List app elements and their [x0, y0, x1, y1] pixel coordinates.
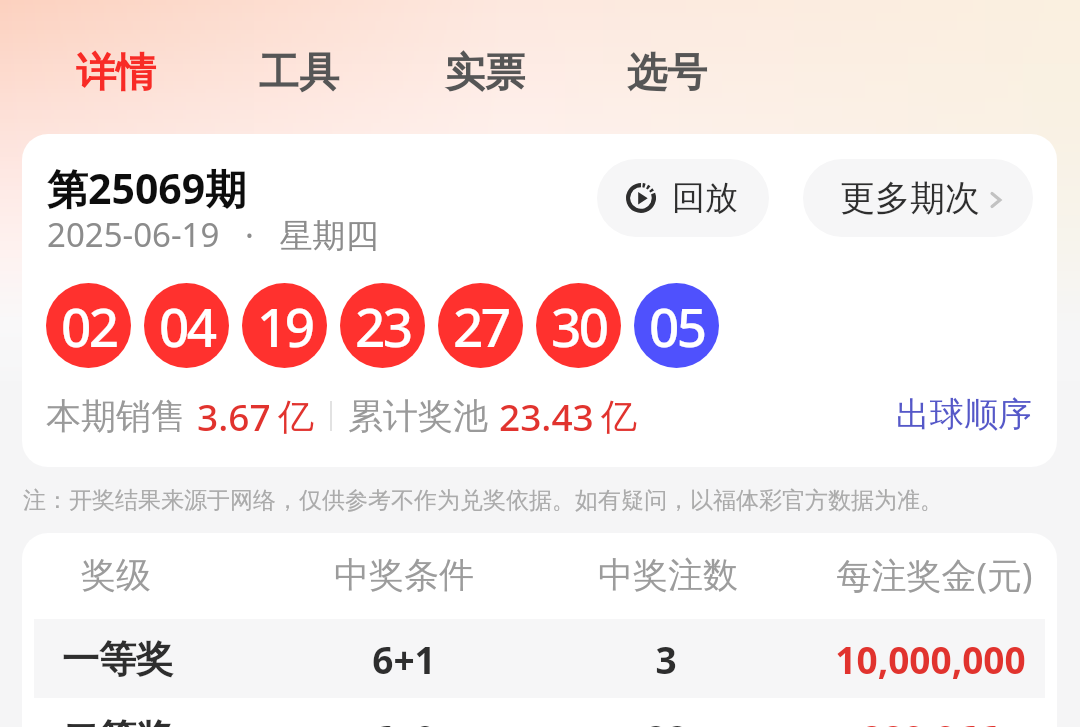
button[interactable]: 选号	[609, 34, 725, 110]
staticText: 6+0	[372, 713, 436, 727]
staticText: 累计奖池	[348, 394, 488, 438]
button[interactable]: 工具	[241, 34, 357, 110]
staticText: 中奖条件	[334, 553, 474, 597]
staticText: 注：开奖结果来源于网络，仅供参考不作为兑奖依据。如有疑问，以福体彩官方数据为准。	[23, 486, 943, 515]
staticText: 02	[61, 290, 117, 362]
staticText: 一等奖	[62, 636, 173, 683]
staticText: 3	[655, 634, 677, 684]
other: 回放	[626, 183, 656, 213]
staticText: 05	[649, 290, 705, 362]
staticText: 实票	[445, 47, 525, 97]
staticText: 本期销售	[46, 394, 186, 438]
button[interactable]: 回放	[597, 159, 769, 237]
staticText: 详情	[76, 47, 156, 97]
staticText: 23.43	[499, 391, 594, 441]
button[interactable]: 详情	[58, 34, 174, 110]
staticText: 10,000,000	[835, 634, 1026, 684]
staticText: 奖级	[81, 553, 151, 597]
staticText: 30	[551, 290, 607, 362]
staticText: 3.67	[197, 391, 271, 441]
staticText: 回放	[672, 177, 738, 219]
button[interactable]: 更多期次	[803, 159, 1033, 237]
button[interactable]: 实票	[427, 34, 543, 110]
staticText: 工具	[259, 47, 339, 97]
staticText: 23	[355, 290, 411, 362]
staticText: 27	[453, 290, 509, 362]
staticText: 亿	[278, 394, 314, 439]
button[interactable]	[34, 619, 1045, 698]
staticText: 04	[159, 290, 215, 362]
staticText: 二等奖	[62, 715, 173, 727]
button[interactable]	[34, 698, 1045, 727]
staticText: 第25069期	[47, 160, 247, 216]
staticText: 19	[257, 290, 313, 362]
staticText: 亿	[601, 394, 637, 439]
staticText: 289,966	[861, 713, 999, 727]
staticText: 中奖注数	[598, 553, 738, 597]
staticText: 更多期次	[840, 176, 980, 220]
staticText: 出球顺序	[896, 393, 1032, 436]
staticText: 2025-06-19 · 星期四	[47, 212, 379, 257]
staticText: 每注奖金(元)	[836, 551, 1033, 599]
button[interactable]: 出球顺序	[890, 387, 1038, 442]
staticText: 选号	[627, 47, 707, 97]
staticText: 22	[645, 713, 688, 727]
staticText: 6+1	[372, 634, 436, 684]
